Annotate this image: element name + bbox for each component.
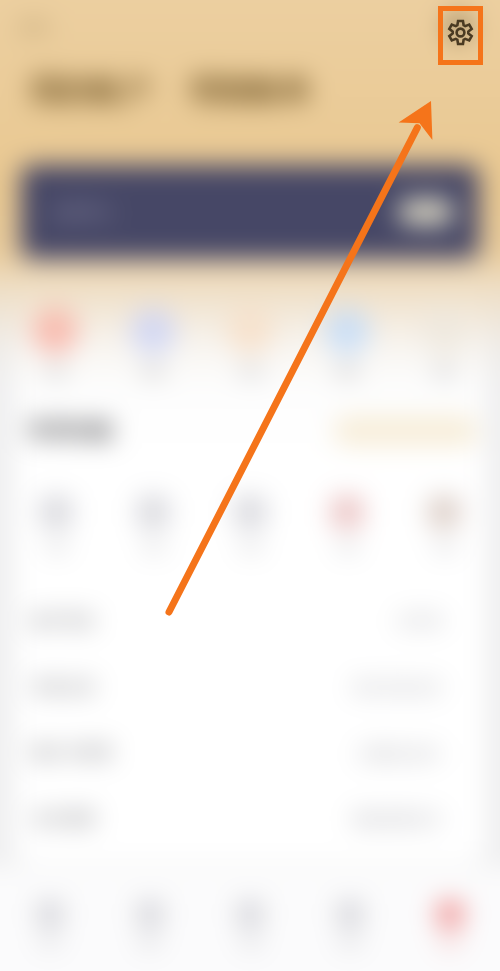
button[interactable]: Settings [447,19,474,46]
button[interactable]: 会员中心 [21,165,479,259]
button[interactable]: 功能 [306,496,388,554]
button[interactable]: Settings [436,4,480,48]
staticText: 支付设置 [32,809,96,829]
button[interactable]: 首页 [0,879,100,971]
staticText: 常用功能 [28,418,112,444]
button[interactable]: 实名认证 [0,654,500,720]
button[interactable]: 银行卡管理 [0,720,500,786]
button[interactable]: 支付设置 [0,786,500,852]
button[interactable]: 功能 [403,496,485,554]
button[interactable]: 我的 [400,879,500,971]
button[interactable]: 记账 [13,308,97,379]
staticText: 明细账单 [190,72,310,110]
button[interactable]: 功能 [112,496,194,554]
button[interactable]: 账单 [100,879,200,971]
button[interactable]: 功能 [209,496,291,554]
button[interactable]: 更多 [403,308,487,379]
staticText: 记账 [43,364,67,379]
button[interactable]: 理财 [305,308,389,379]
button[interactable] [398,199,454,225]
staticText: 我的账户 [30,72,150,110]
staticText: 我的 [439,935,461,949]
button[interactable]: 功能 [15,496,97,554]
button[interactable]: 账户安全 [0,588,500,654]
button[interactable]: 发现 [300,879,400,971]
button[interactable] [333,416,478,446]
button[interactable]: 充值 [208,308,292,379]
button[interactable]: 记账 [200,879,300,971]
button[interactable]: 转账 [111,308,195,379]
